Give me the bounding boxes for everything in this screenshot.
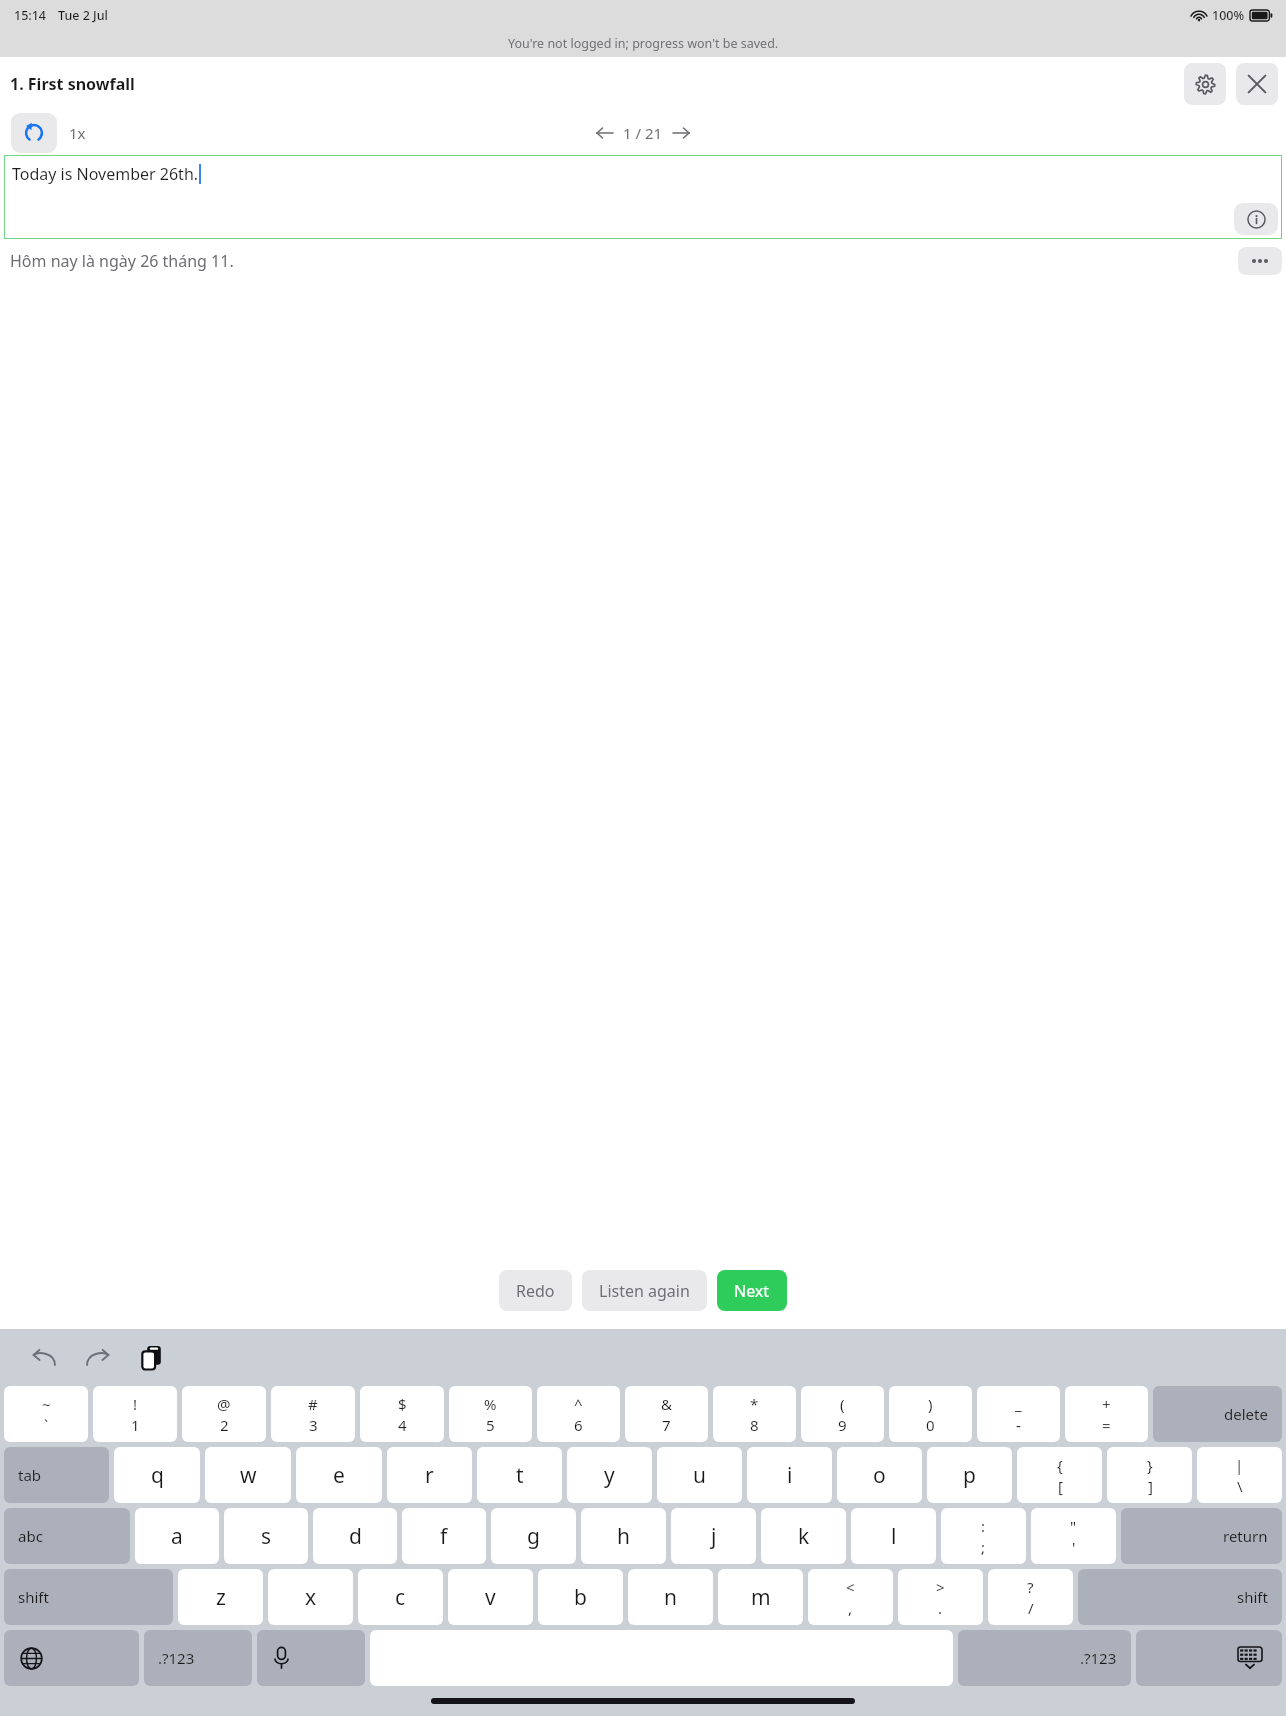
button[interactable]: Voice input	[257, 1630, 365, 1686]
staticText: r	[425, 1461, 434, 1490]
staticText: Listen again	[599, 1280, 690, 1302]
button[interactable]: #	[271, 1386, 355, 1442]
button[interactable]: Hide keyboard	[1136, 1630, 1282, 1686]
button[interactable]: _	[977, 1386, 1060, 1442]
staticText: )	[928, 1394, 933, 1414]
staticText: [	[1058, 1476, 1063, 1496]
staticText: 9	[838, 1415, 847, 1435]
staticText: +	[1102, 1394, 1111, 1414]
button[interactable]: >	[898, 1569, 983, 1625]
button[interactable]: p	[927, 1447, 1012, 1503]
button[interactable]: q	[114, 1447, 200, 1503]
button[interactable]: Undo	[24, 1338, 64, 1378]
button[interactable]: j	[671, 1508, 756, 1564]
staticText: 1x	[69, 123, 86, 143]
button[interactable]: Redo	[499, 1270, 572, 1311]
button[interactable]: Close	[1236, 63, 1278, 105]
button[interactable]: Previous	[590, 118, 620, 148]
button[interactable]: )	[889, 1386, 972, 1442]
button[interactable]: ^	[537, 1386, 620, 1442]
button[interactable]: m	[718, 1569, 803, 1625]
button[interactable]: .?123	[958, 1630, 1131, 1686]
button[interactable]: +	[1065, 1386, 1148, 1442]
button[interactable]: Redo	[78, 1338, 118, 1378]
button[interactable]: .?123	[144, 1630, 252, 1686]
staticText: You're not logged in; progress won't be …	[508, 35, 779, 52]
button[interactable]: y	[567, 1447, 652, 1503]
button[interactable]: 1x	[69, 123, 86, 143]
staticText: q	[151, 1461, 164, 1490]
button[interactable]: delete	[1153, 1386, 1282, 1442]
staticText: 6	[574, 1415, 583, 1435]
staticText: 7	[662, 1415, 671, 1435]
button[interactable]: Next	[717, 1270, 787, 1311]
staticText: a	[171, 1522, 183, 1551]
button[interactable]: shift	[1078, 1569, 1282, 1625]
staticText: 4	[398, 1415, 407, 1435]
button[interactable]: ?	[988, 1569, 1073, 1625]
button[interactable]: n	[628, 1569, 713, 1625]
button[interactable]: e	[296, 1447, 382, 1503]
staticText: \	[1237, 1476, 1243, 1496]
button[interactable]: $	[360, 1386, 444, 1442]
staticText: 100%	[1212, 7, 1245, 24]
button[interactable]: i	[747, 1447, 832, 1503]
staticText: 8	[750, 1415, 759, 1435]
button[interactable]: d	[313, 1508, 397, 1564]
button[interactable]: :	[941, 1508, 1026, 1564]
button[interactable]: Listen again	[582, 1270, 707, 1311]
button[interactable]: b	[538, 1569, 623, 1625]
button[interactable]: Replay	[11, 113, 57, 153]
button[interactable]: x	[268, 1569, 353, 1625]
button[interactable]: r	[387, 1447, 472, 1503]
button[interactable]: |	[1197, 1447, 1282, 1503]
button[interactable]: Info	[1234, 203, 1278, 235]
staticText: y	[604, 1461, 615, 1490]
button[interactable]: *	[713, 1386, 796, 1442]
staticText: o	[873, 1461, 886, 1490]
button[interactable]: Paste	[132, 1338, 172, 1378]
button[interactable]: u	[657, 1447, 742, 1503]
button[interactable]: tab	[4, 1447, 109, 1503]
staticText: c	[395, 1583, 406, 1612]
staticText: 3	[309, 1415, 318, 1435]
button[interactable]: &	[625, 1386, 708, 1442]
staticText: h	[617, 1522, 630, 1551]
staticText: f	[440, 1522, 448, 1551]
button[interactable]: ~	[4, 1386, 88, 1442]
button[interactable]: }	[1107, 1447, 1192, 1503]
button[interactable]: <	[808, 1569, 893, 1625]
button[interactable]: {	[1017, 1447, 1102, 1503]
staticText: 1 / 21	[623, 123, 663, 143]
button[interactable]: Settings	[1184, 63, 1226, 105]
button[interactable]: t	[477, 1447, 562, 1503]
button[interactable]: s	[224, 1508, 308, 1564]
staticText: shift	[18, 1587, 49, 1607]
button[interactable]: More options	[1238, 247, 1282, 275]
button[interactable]: z	[178, 1569, 263, 1625]
button[interactable]: v	[448, 1569, 533, 1625]
button[interactable]: l	[851, 1508, 936, 1564]
button[interactable]: return	[1121, 1508, 1282, 1564]
button[interactable]: o	[837, 1447, 922, 1503]
button[interactable]: "	[1031, 1508, 1116, 1564]
button[interactable]: abc	[4, 1508, 130, 1564]
button[interactable]: w	[205, 1447, 291, 1503]
button[interactable]: g	[491, 1508, 576, 1564]
button[interactable]: (	[801, 1386, 884, 1442]
button[interactable]: Change keyboard language	[4, 1630, 139, 1686]
button[interactable]: %	[449, 1386, 532, 1442]
button[interactable]: !	[93, 1386, 177, 1442]
button[interactable]: f	[402, 1508, 486, 1564]
button[interactable]: Next item	[666, 118, 696, 148]
button[interactable]: c	[358, 1569, 443, 1625]
button[interactable]: a	[135, 1508, 219, 1564]
button[interactable]: @	[182, 1386, 266, 1442]
staticText: @	[217, 1394, 231, 1414]
button[interactable]: Today is November 26th.	[4, 155, 1282, 239]
button[interactable]: shift	[4, 1569, 173, 1625]
button[interactable]: h	[581, 1508, 666, 1564]
button[interactable]: k	[761, 1508, 846, 1564]
staticText: Redo	[516, 1280, 555, 1302]
